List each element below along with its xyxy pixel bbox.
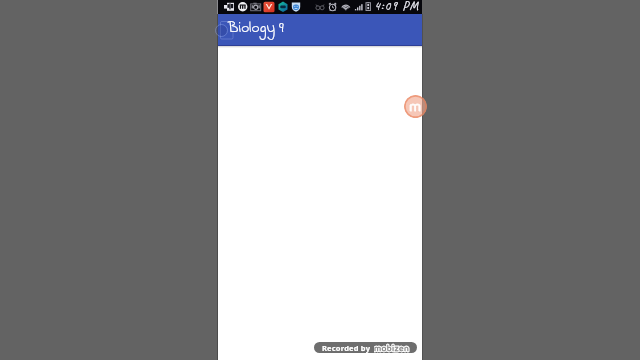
button[interactable]: Mobizen recorder bbox=[404, 95, 427, 118]
staticText: m bbox=[409, 95, 422, 118]
staticText: Recorded by bbox=[322, 343, 371, 353]
button[interactable]: Navigate up bbox=[218, 15, 234, 46]
staticText: mobizen bbox=[374, 342, 410, 353]
staticText: Biology 9 bbox=[228, 17, 284, 40]
staticText: 4:09 PM bbox=[374, 0, 420, 12]
staticText: mobizen bbox=[374, 342, 410, 353]
